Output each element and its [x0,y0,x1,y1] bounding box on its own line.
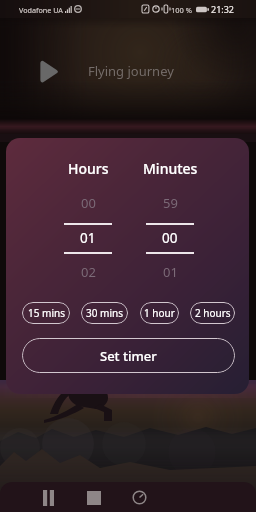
staticText: 01 [80,229,96,247]
button[interactable]: 2 hours [190,302,235,324]
staticText: 21:32 [211,3,235,15]
staticText: Vodafone UA [19,5,63,15]
staticText: 15 mins [28,306,65,320]
button[interactable]: Stop [79,483,108,512]
staticText: 00 [162,229,178,247]
staticText: 00 [81,194,96,212]
staticText: 02 [81,263,96,281]
staticText: 01 [163,263,178,281]
staticText: Flying journey [88,62,174,80]
button[interactable]: 15 mins [22,302,70,324]
button[interactable]: 1 hour [140,302,179,324]
staticText: 2 hours [195,306,231,320]
staticText: Set timer [100,347,157,365]
button[interactable]: Set timer [22,338,235,373]
button[interactable]: 30 mins [81,302,128,324]
staticText: Hours [68,159,109,178]
button[interactable]: Sleep timer [125,483,154,512]
staticText: Minutes [143,159,198,178]
staticText: 59 [163,194,178,212]
staticText: 30 mins [86,306,123,320]
staticText: 1 hour [144,306,175,320]
staticText: 100 % [171,5,193,15]
button[interactable]: Play [33,55,65,87]
button[interactable]: Pause [34,483,63,512]
